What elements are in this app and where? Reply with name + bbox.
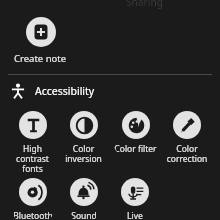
staticText: Color inversion: [59, 143, 108, 165]
button[interactable]: Accessibility: [0, 80, 220, 102]
button[interactable]: Bluetooth: [12, 177, 54, 220]
button[interactable]: Color filter: [113, 110, 158, 156]
button[interactable]: Live Transcribe: [109, 177, 161, 220]
button[interactable]: Create note: [10, 15, 71, 67]
button[interactable]: High contrast fonts: [7, 110, 58, 176]
button[interactable]: Color inversion: [58, 110, 109, 166]
staticText: High contrast fonts: [8, 143, 57, 175]
button[interactable]: Sound: [69, 177, 99, 220]
staticText: Color correction: [162, 143, 212, 165]
staticText: Live Transcribe: [110, 210, 160, 220]
staticText: Accessibility: [35, 84, 95, 98]
staticText: Color filter: [114, 143, 157, 155]
button[interactable]: Color correction: [161, 110, 213, 166]
staticText: Bluetooth: [13, 210, 53, 220]
staticText: Sharing: [126, 0, 163, 9]
staticText: Create note: [14, 52, 67, 65]
staticText: Sound: [71, 210, 97, 220]
